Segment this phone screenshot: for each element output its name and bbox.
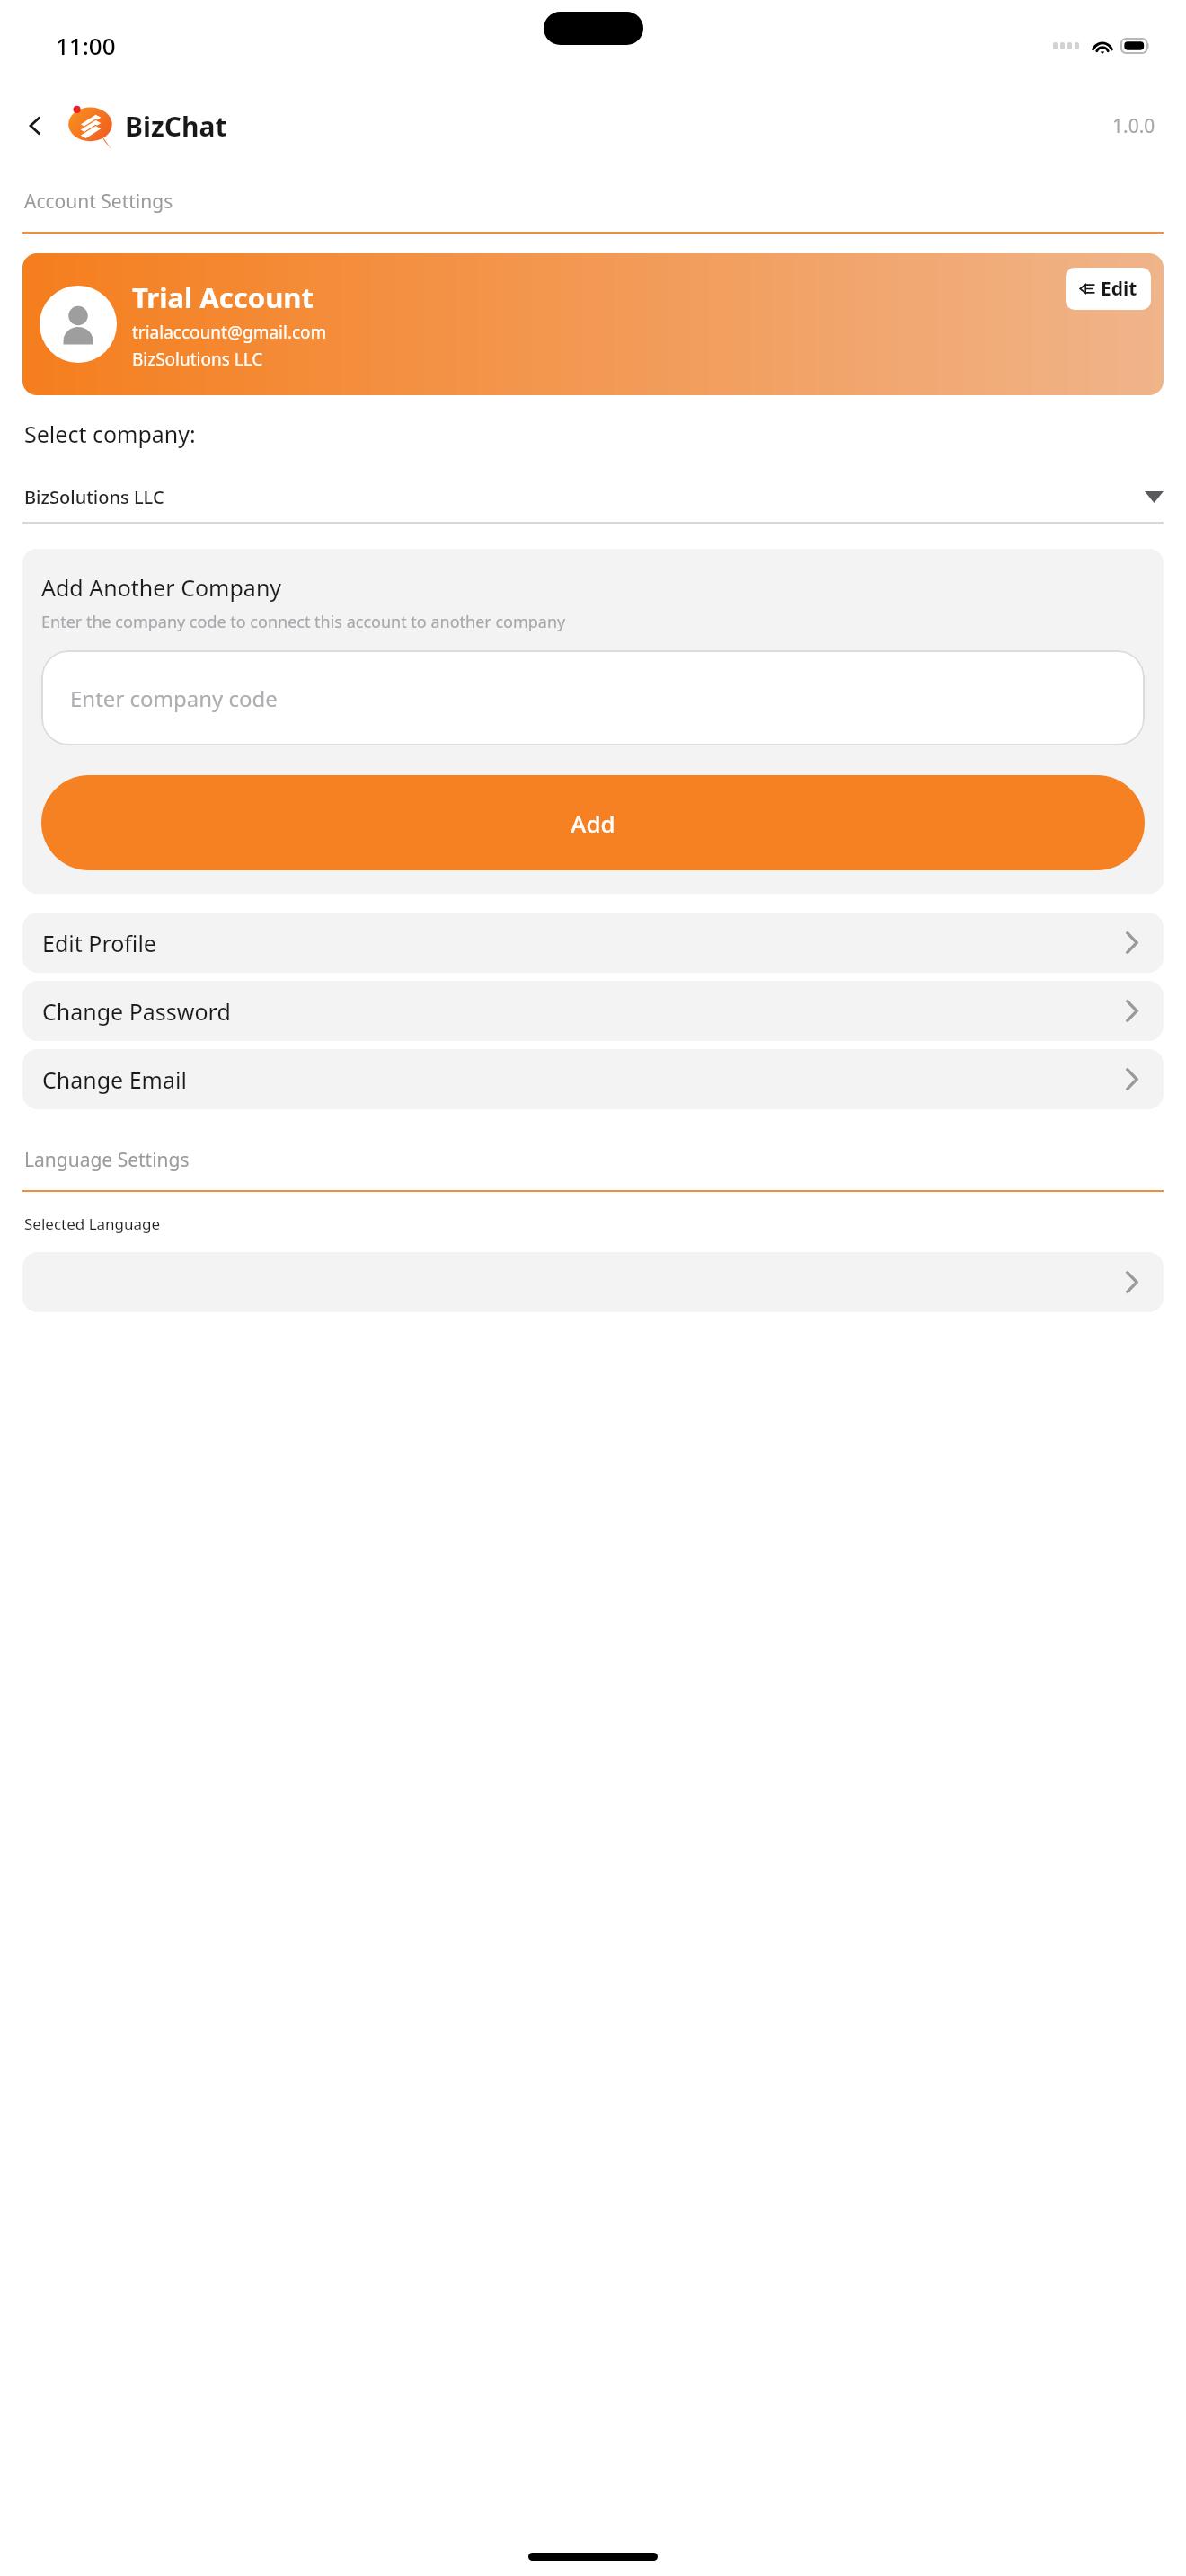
button[interactable]: BizSolutions LLC [22,485,1164,522]
staticText: Language Settings [24,1147,190,1173]
staticText: BizSolutions LLC [24,485,1145,509]
button[interactable]: Edit [1066,268,1151,310]
staticText: 1.0.0 [1112,113,1155,139]
staticText: BizChat [125,108,227,145]
staticText: Edit Profile [42,928,156,958]
button[interactable]: Edit Profile [22,913,1164,973]
button[interactable]: Back [13,102,59,149]
staticText: Enter company code [70,684,278,713]
button[interactable]: Trial Account [22,253,1164,395]
staticText: Add Another Company [41,572,282,603]
staticText: Add [571,807,615,839]
button[interactable] [22,1252,1164,1312]
staticText: Trial Account [132,278,314,316]
button[interactable]: Change Password [22,981,1164,1041]
staticText: Enter the company code to connect this a… [41,611,566,633]
staticText: BizSolutions LLC [132,348,263,371]
staticText: Selected Language [24,1213,161,1234]
staticText: Change Email [42,1064,187,1095]
staticText: Edit [1101,276,1137,302]
button[interactable]: Add [41,775,1145,870]
button[interactable]: Change Email [22,1049,1164,1109]
staticText: Change Password [42,996,231,1027]
button[interactable]: Enter company code [41,650,1145,745]
staticText: Select company: [24,419,196,449]
staticText: Account Settings [24,189,173,215]
staticText: trialaccount@gmail.com [132,321,327,344]
staticText: 11:00 [56,30,116,61]
